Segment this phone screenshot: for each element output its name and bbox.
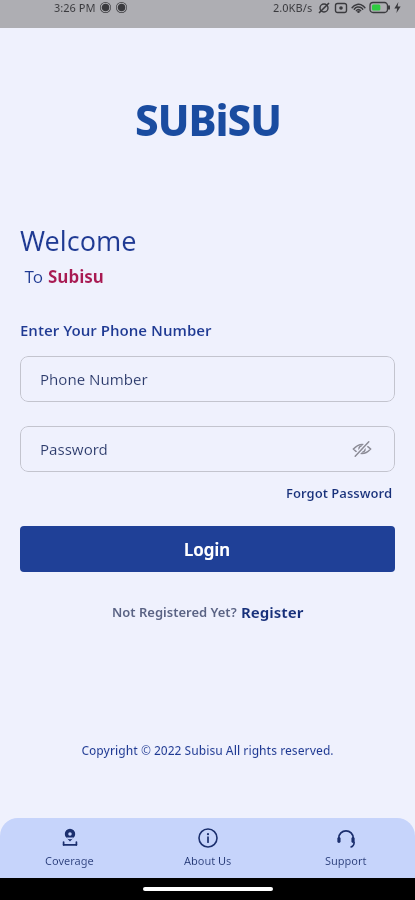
staticText: Subisu <box>48 265 104 288</box>
button[interactable]: Forgot Password <box>284 482 395 504</box>
staticText: Not Registered Yet? <box>112 603 241 621</box>
staticText: Welcome <box>20 222 137 259</box>
staticText: Login <box>184 538 231 561</box>
button[interactable]: Register <box>241 602 304 622</box>
button[interactable]: Coverage <box>0 820 139 876</box>
staticText: Enter Your Phone Number <box>20 320 212 340</box>
button[interactable]: Phone Number <box>20 356 395 402</box>
staticText: 2.0KB/s <box>273 0 313 15</box>
staticText: Phone Number <box>40 369 148 389</box>
staticText: SUBiSU <box>135 91 281 148</box>
button[interactable]: Login <box>20 526 395 572</box>
button[interactable]: Password <box>20 426 395 472</box>
staticText: Copyright © 2022 Subisu All rights reser… <box>0 742 415 758</box>
staticText: About Us <box>184 853 232 868</box>
button[interactable]: Support <box>277 820 415 876</box>
staticText: Support <box>325 853 367 868</box>
staticText: 3:26 PM <box>54 0 96 15</box>
button[interactable]: About Us <box>139 820 277 876</box>
staticText: Forgot Password <box>286 484 393 502</box>
button[interactable]: Show password <box>349 436 375 462</box>
staticText: Coverage <box>45 853 94 868</box>
staticText: Password <box>40 439 108 459</box>
staticText: To <box>20 265 48 288</box>
staticText: Register <box>241 602 304 622</box>
